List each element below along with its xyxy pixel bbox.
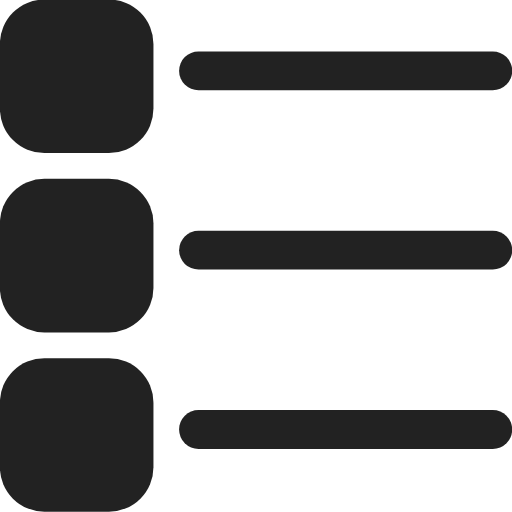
button[interactable]: Third item [0, 358, 512, 512]
button[interactable]: First item [0, 0, 512, 179]
button[interactable]: Second item [0, 179, 512, 358]
